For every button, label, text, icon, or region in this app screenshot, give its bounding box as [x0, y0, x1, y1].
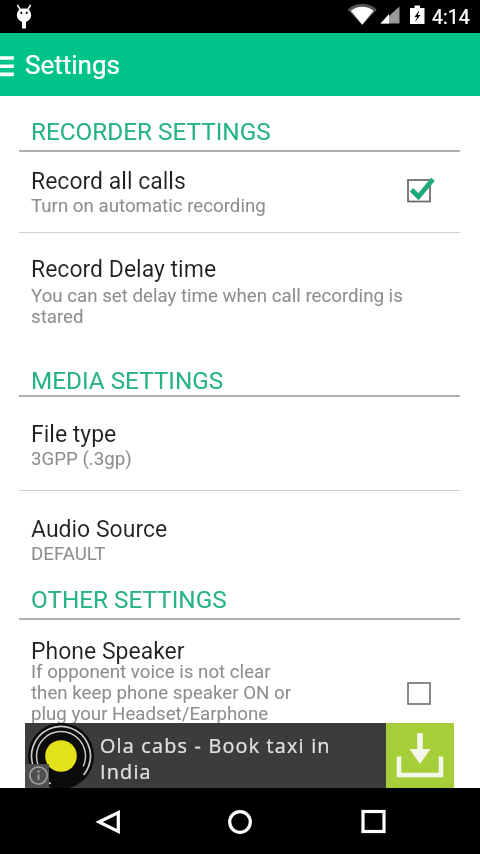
button[interactable]: Install app	[386, 723, 454, 788]
staticText: Settings	[25, 50, 120, 80]
button[interactable]: Record all calls checkbox, checked	[403, 175, 435, 207]
staticText: Audio Source	[31, 516, 168, 543]
button[interactable]	[0, 152, 480, 232]
staticText: If opponent voice is not clear then keep…	[31, 661, 303, 725]
staticText: RECORDER SETTINGS	[31, 117, 271, 145]
button[interactable]: Recent apps	[350, 798, 398, 846]
staticText: Turn on automatic recording	[31, 195, 266, 217]
button[interactable]	[0, 397, 480, 487]
staticText: Ola cabs - Book taxi in India	[100, 732, 350, 785]
staticText: 3GPP (.3gp)	[31, 448, 132, 470]
staticText: OTHER SETTINGS	[31, 585, 227, 613]
staticText: 4:14	[432, 6, 470, 29]
button[interactable]: Open navigation drawer	[0, 42, 16, 80]
staticText: Record Delay time	[31, 256, 217, 283]
staticText: MEDIA SETTINGS	[31, 366, 224, 394]
staticText: DEFAULT	[31, 543, 106, 565]
button[interactable]	[0, 234, 480, 334]
button[interactable]	[0, 620, 480, 720]
button[interactable]	[0, 492, 480, 582]
staticText: Record all calls	[31, 168, 186, 195]
button[interactable]: Home	[216, 798, 264, 846]
button[interactable]	[25, 723, 386, 788]
staticText: Phone Speaker	[31, 638, 185, 665]
button[interactable]: Phone speaker checkbox, unchecked	[403, 678, 435, 710]
button[interactable]: Back	[85, 798, 133, 846]
staticText: You can set delay time when call recordi…	[31, 285, 416, 328]
staticText: File type	[31, 421, 117, 448]
